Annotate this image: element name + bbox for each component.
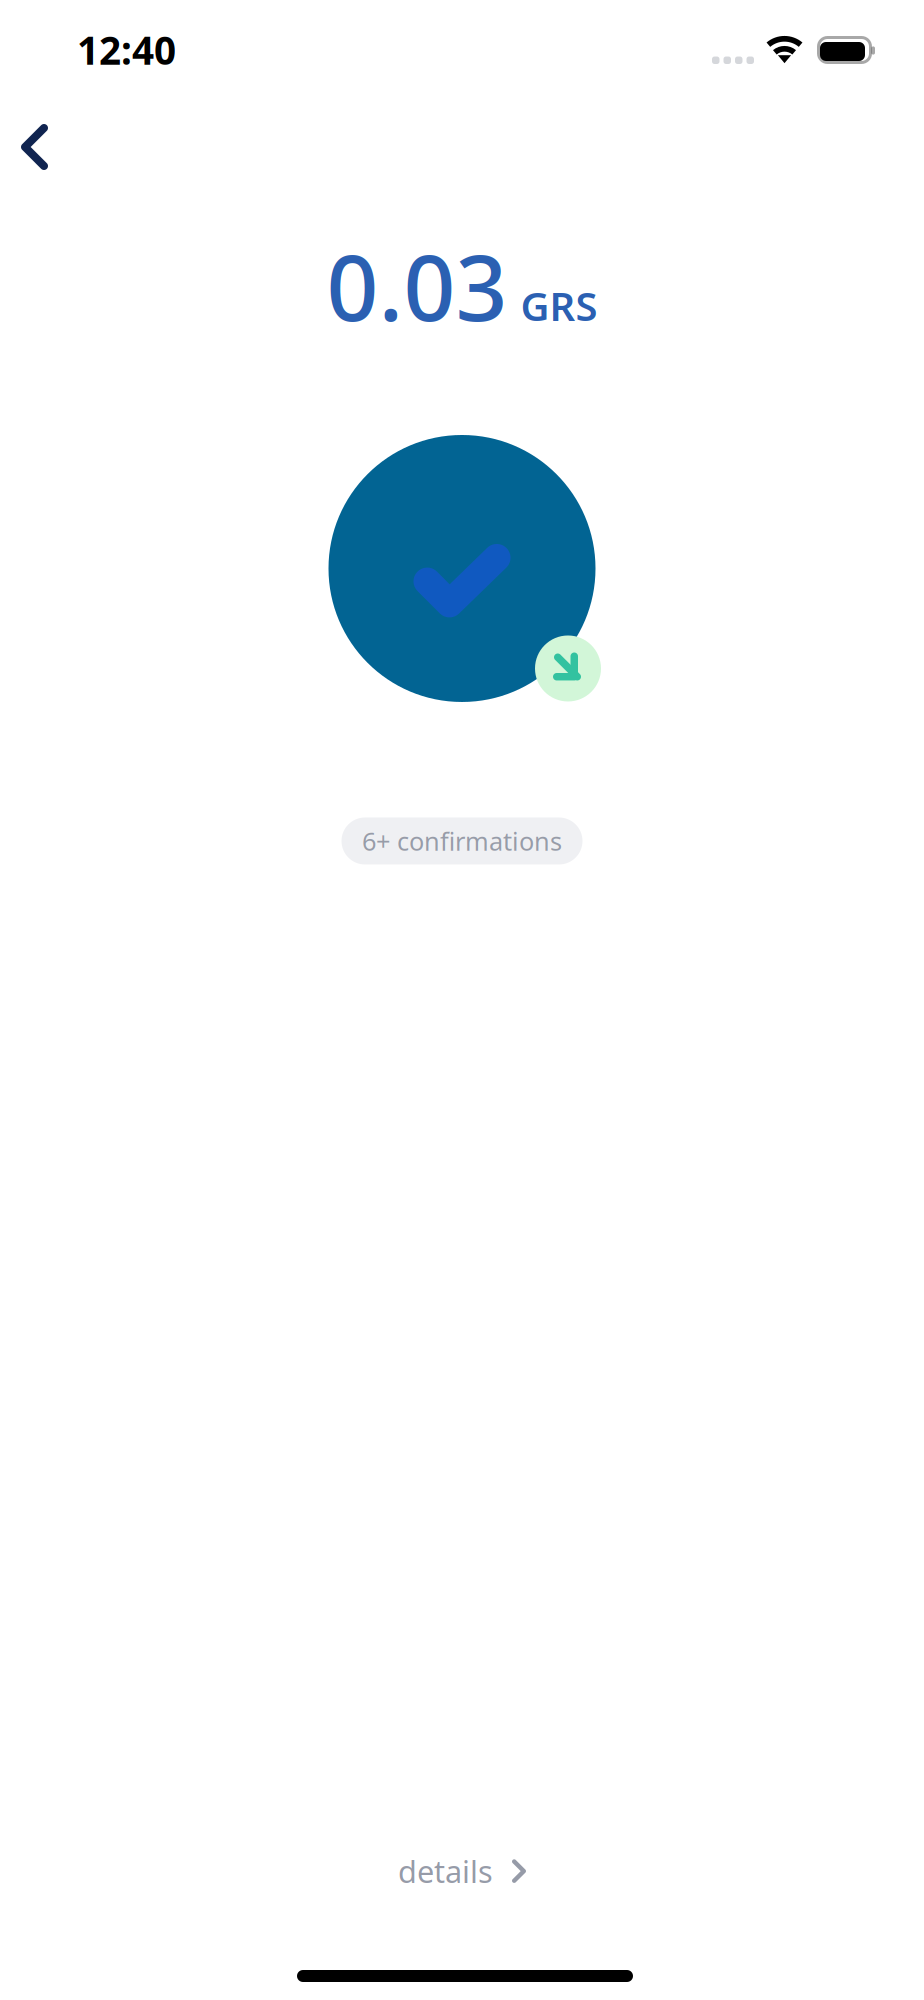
staticText: GRS <box>520 278 597 333</box>
button[interactable]: Back <box>0 93 86 189</box>
button[interactable]: details <box>364 1832 560 1910</box>
staticText: 0.03 <box>326 224 507 347</box>
staticText: details <box>398 1850 493 1892</box>
staticText: 6+ confirmations <box>362 824 562 858</box>
staticText: 12:40 <box>77 23 176 76</box>
